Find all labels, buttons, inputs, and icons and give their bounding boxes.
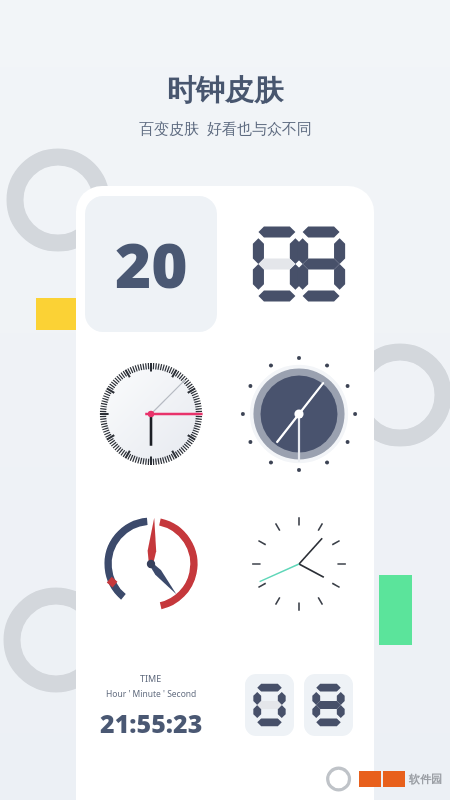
button[interactable]: Clock skin bbox=[233, 646, 365, 764]
button[interactable]: Clock skin bbox=[85, 346, 217, 482]
button[interactable]: 时钟皮肤 bbox=[167, 72, 283, 109]
staticText: 百变皮肤 好看也与众不同 bbox=[139, 118, 312, 138]
button[interactable]: Clock skin bbox=[233, 196, 365, 332]
button[interactable]: Clock skin bbox=[233, 346, 365, 482]
button[interactable]: Clock skin bbox=[85, 646, 217, 764]
button[interactable]: Clock skin bbox=[85, 496, 217, 632]
staticText: 软件园 bbox=[409, 772, 442, 786]
button[interactable]: Clock skin bbox=[233, 496, 365, 632]
button[interactable]: Clock skin bbox=[85, 196, 217, 332]
staticText: 时钟皮肤 bbox=[167, 72, 283, 109]
staticText: 21:55:23 bbox=[100, 706, 203, 740]
staticText: Hour ' Minute ' Second bbox=[106, 688, 197, 700]
staticText: TIME bbox=[140, 672, 162, 684]
staticText: 20 bbox=[115, 222, 188, 306]
